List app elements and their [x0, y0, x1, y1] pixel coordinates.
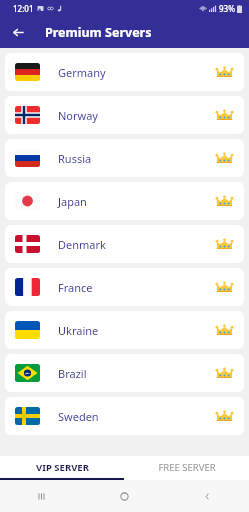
staticText: Brazil — [58, 366, 87, 381]
staticText: Premium Servers — [45, 24, 152, 41]
button[interactable]: Recent apps — [0, 480, 83, 512]
button[interactable]: Ukraine — [5, 311, 244, 349]
staticText: 12:01 — [13, 3, 34, 14]
staticText: VIP SERVER — [36, 461, 89, 474]
staticText: France — [58, 280, 93, 295]
button[interactable]: Home — [83, 480, 166, 512]
button[interactable]: FREE SERVER — [124, 456, 249, 478]
button[interactable]: France — [5, 268, 244, 306]
button[interactable]: Denmark — [5, 225, 244, 263]
button[interactable]: Russia — [5, 139, 244, 177]
button[interactable]: Norway — [5, 96, 244, 134]
staticText: Denmark — [58, 237, 106, 252]
button[interactable]: Japan — [5, 182, 244, 220]
staticText: Sweden — [58, 409, 99, 424]
button[interactable]: Sweden — [5, 397, 244, 435]
staticText: Norway — [58, 108, 98, 123]
button[interactable]: Back — [166, 480, 249, 512]
staticText: Ukraine — [58, 323, 99, 338]
staticText: Germany — [58, 65, 106, 80]
staticText: Japan — [58, 194, 87, 209]
button[interactable]: Brazil — [5, 354, 244, 392]
button[interactable]: Back — [6, 20, 30, 44]
staticText: FREE SERVER — [158, 461, 216, 474]
button[interactable]: Germany — [5, 53, 244, 91]
staticText: 93% — [219, 3, 235, 14]
button[interactable]: VIP SERVER — [0, 456, 124, 478]
staticText: Russia — [58, 151, 92, 166]
